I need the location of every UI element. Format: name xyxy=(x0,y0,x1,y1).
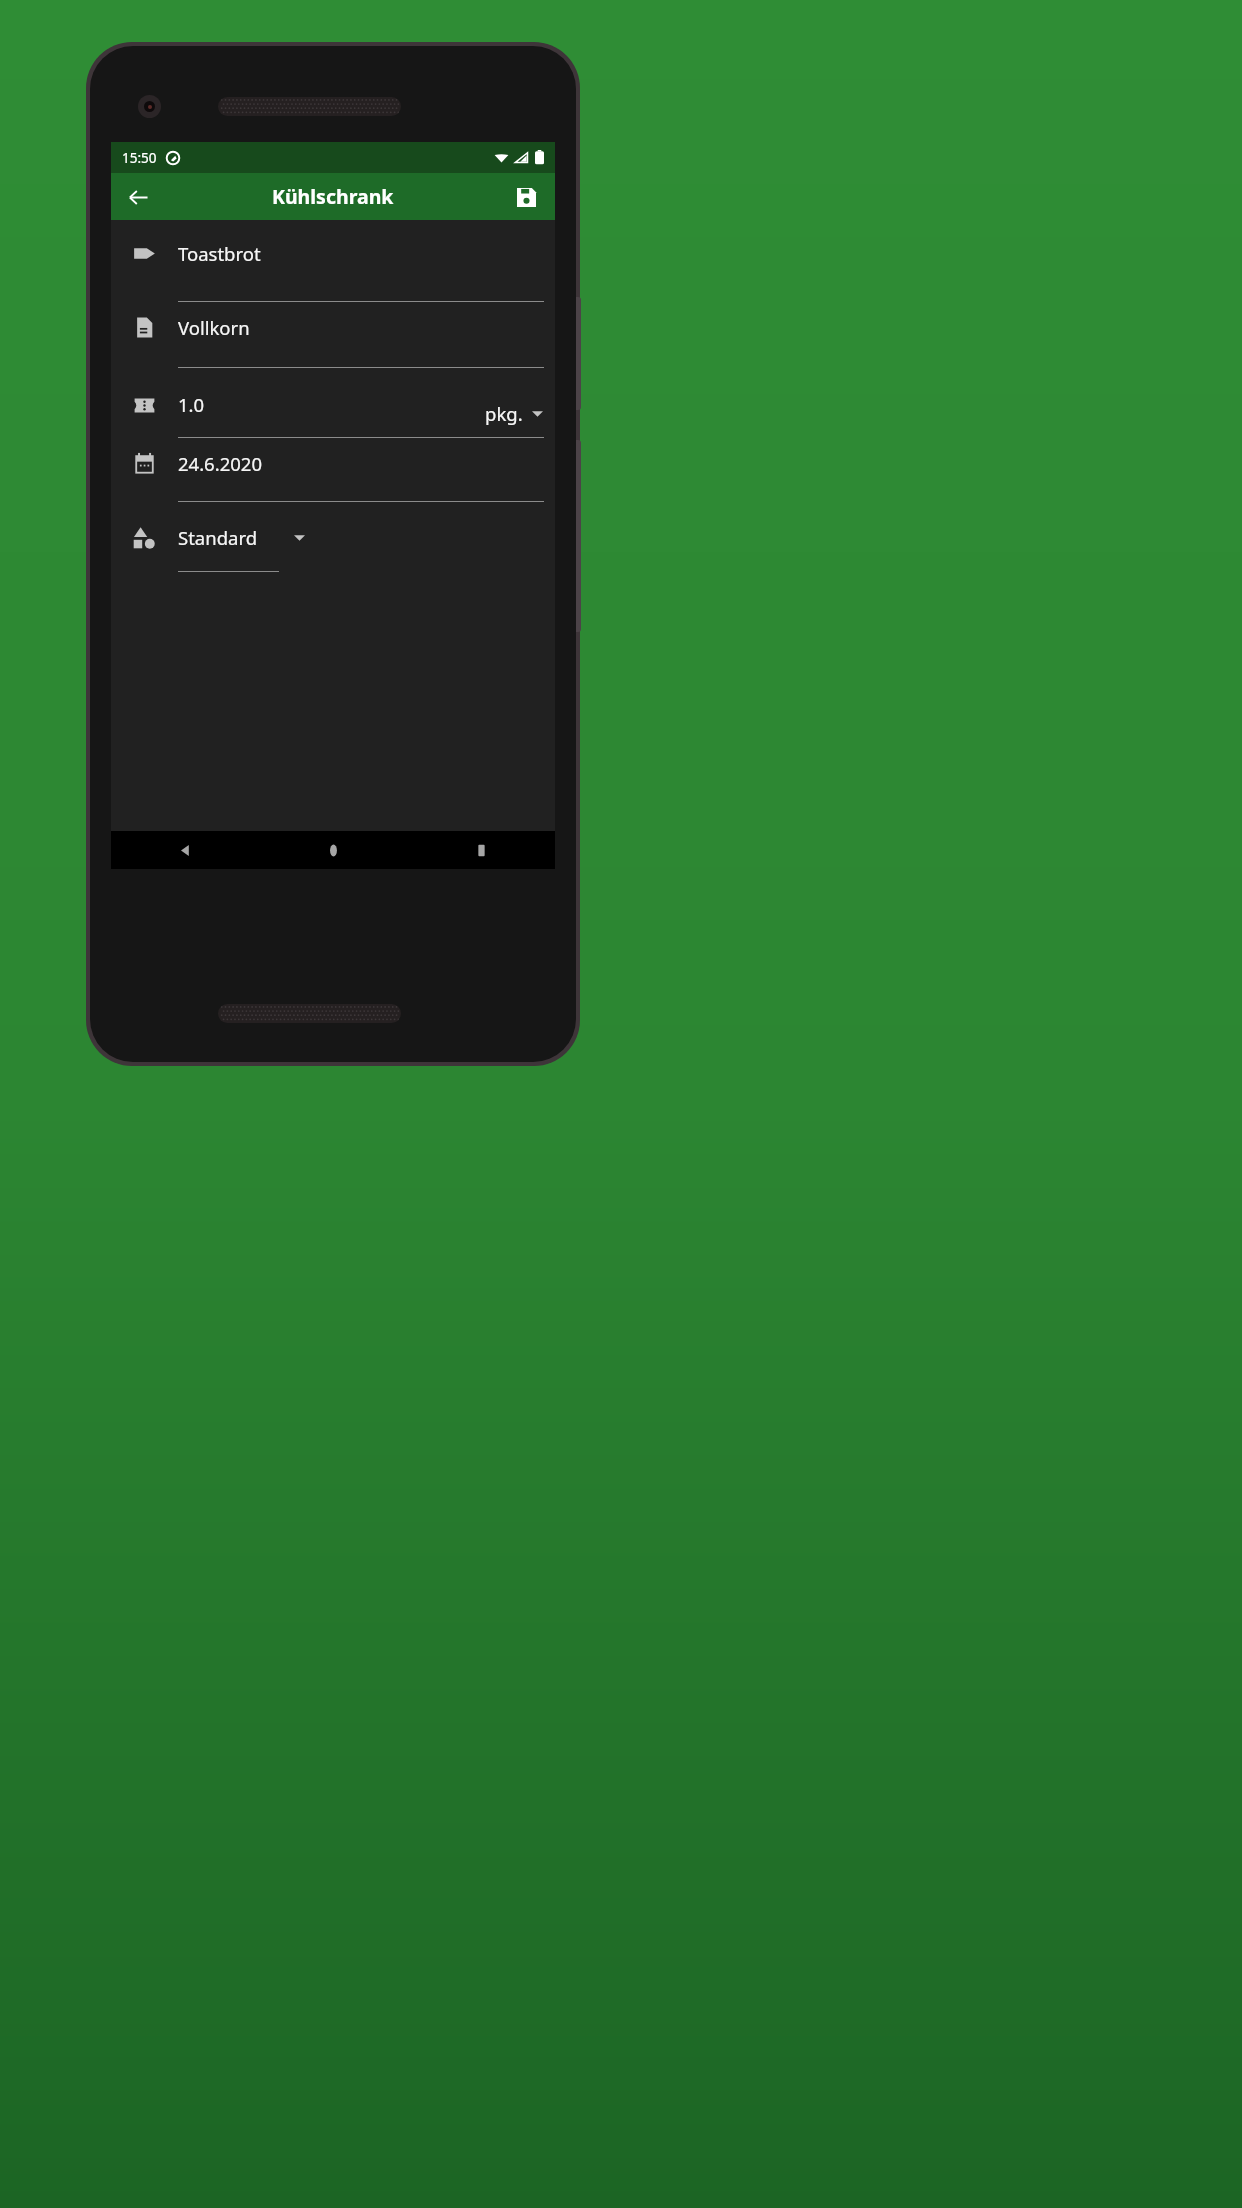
button[interactable]: Standard xyxy=(111,502,555,572)
staticText: Kühlschrank xyxy=(272,183,394,210)
staticText: 24.6.2020 xyxy=(178,451,262,476)
button[interactable]: 1.0 xyxy=(111,368,555,438)
staticText: 1.0 xyxy=(178,392,205,417)
button[interactable]: Back xyxy=(118,177,158,217)
button[interactable]: Save xyxy=(506,177,546,217)
button[interactable]: Vollkorn xyxy=(111,302,555,368)
button[interactable]: pkg. xyxy=(485,401,543,426)
button[interactable]: Toastbrot xyxy=(111,220,555,302)
button[interactable]: Home xyxy=(259,831,407,869)
button[interactable]: 24.6.2020 xyxy=(111,438,555,502)
staticText: Toastbrot xyxy=(178,241,261,266)
staticText: Standard xyxy=(178,525,258,550)
button[interactable]: Back xyxy=(111,831,259,869)
button[interactable]: Recents xyxy=(407,831,555,869)
staticText: 15:50 xyxy=(122,149,157,167)
staticText: pkg. xyxy=(485,401,523,426)
staticText: Vollkorn xyxy=(178,315,250,340)
